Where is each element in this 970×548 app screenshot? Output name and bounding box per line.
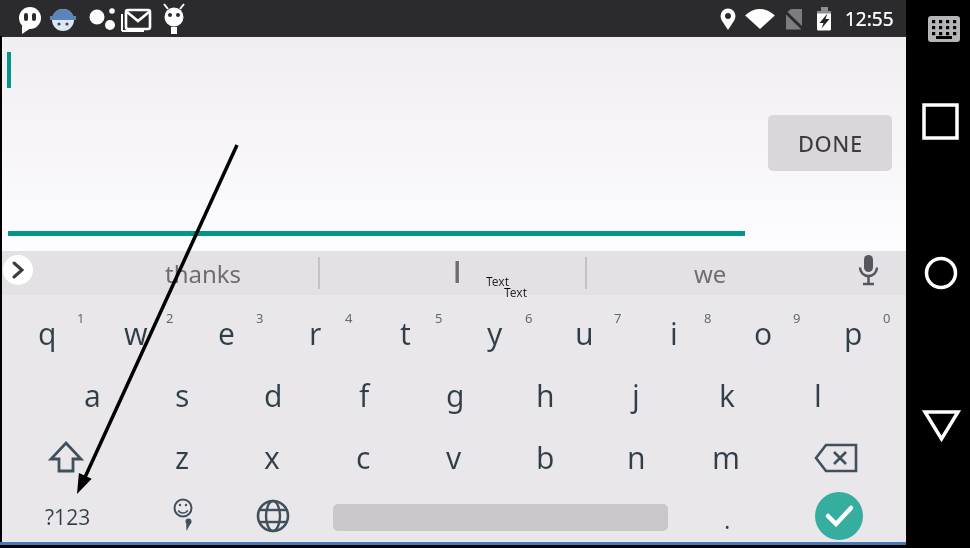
- staticText: 6: [525, 309, 533, 327]
- staticText: v: [446, 437, 462, 478]
- staticText: 5: [435, 309, 443, 327]
- button[interactable]: [815, 492, 863, 540]
- button[interactable]: [400, 251, 520, 295]
- staticText: ?123: [45, 503, 91, 532]
- button[interactable]: thanks: [123, 251, 283, 295]
- staticText: k: [719, 375, 736, 416]
- staticText: we: [694, 257, 727, 290]
- button[interactable]: s: [138, 365, 226, 425]
- staticText: thanks: [165, 257, 242, 290]
- staticText: w: [124, 313, 148, 354]
- button[interactable]: z: [138, 427, 226, 487]
- staticText: 3: [256, 309, 264, 327]
- staticText: a: [84, 375, 101, 416]
- button[interactable]: m: [682, 427, 770, 487]
- staticText: Text: [504, 284, 528, 300]
- staticText: t: [400, 313, 411, 354]
- button[interactable]: l: [774, 365, 862, 425]
- button[interactable]: DONE: [768, 115, 892, 171]
- button[interactable]: w: [92, 303, 180, 363]
- staticText: DONE: [798, 128, 863, 158]
- staticText: b: [536, 437, 555, 478]
- staticText: e: [218, 313, 235, 354]
- button[interactable]: a: [48, 365, 136, 425]
- staticText: Text: [486, 273, 510, 289]
- staticText: l: [814, 375, 822, 416]
- button[interactable]: e: [182, 303, 270, 363]
- button[interactable]: we: [650, 251, 770, 295]
- button[interactable]: n: [592, 427, 680, 487]
- staticText: 4: [345, 309, 353, 327]
- staticText: c: [356, 437, 371, 478]
- button[interactable]: ?123: [20, 492, 116, 542]
- button[interactable]: t: [361, 303, 449, 363]
- staticText: n: [627, 437, 646, 478]
- staticText: q: [38, 313, 57, 354]
- staticText: i: [670, 313, 678, 354]
- staticText: m: [712, 437, 741, 478]
- button[interactable]: o: [719, 303, 807, 363]
- staticText: y: [487, 313, 503, 354]
- staticText: 8: [704, 309, 712, 327]
- button[interactable]: i: [630, 303, 718, 363]
- staticText: p: [844, 313, 863, 354]
- button[interactable]: d: [229, 365, 317, 425]
- button[interactable]: u: [540, 303, 628, 363]
- staticText: u: [575, 313, 594, 354]
- staticText: 7: [614, 309, 622, 327]
- button[interactable]: b: [501, 427, 589, 487]
- button[interactable]: k: [683, 365, 771, 425]
- staticText: d: [264, 375, 283, 416]
- button[interactable]: g: [411, 365, 499, 425]
- staticText: 12:55: [845, 6, 894, 32]
- staticText: .: [724, 503, 731, 533]
- button[interactable]: c: [319, 427, 407, 487]
- staticText: 2: [166, 309, 174, 327]
- staticText: r: [309, 313, 322, 354]
- staticText: x: [264, 437, 280, 478]
- staticText: 9: [793, 309, 801, 327]
- button[interactable]: h: [501, 365, 589, 425]
- staticText: s: [175, 375, 190, 416]
- staticText: h: [536, 375, 555, 416]
- button[interactable]: q: [3, 303, 91, 363]
- button[interactable]: f: [320, 365, 408, 425]
- button[interactable]: p: [809, 303, 897, 363]
- staticText: 1: [77, 309, 85, 327]
- button[interactable]: j: [592, 365, 680, 425]
- button[interactable]: x: [228, 427, 316, 487]
- staticText: j: [632, 375, 640, 416]
- staticText: g: [446, 375, 465, 416]
- staticText: z: [175, 437, 190, 478]
- button[interactable]: y: [451, 303, 539, 363]
- button[interactable]: v: [410, 427, 498, 487]
- staticText: 0: [883, 309, 891, 327]
- staticText: o: [754, 313, 773, 354]
- staticText: f: [359, 375, 370, 416]
- button[interactable]: r: [271, 303, 359, 363]
